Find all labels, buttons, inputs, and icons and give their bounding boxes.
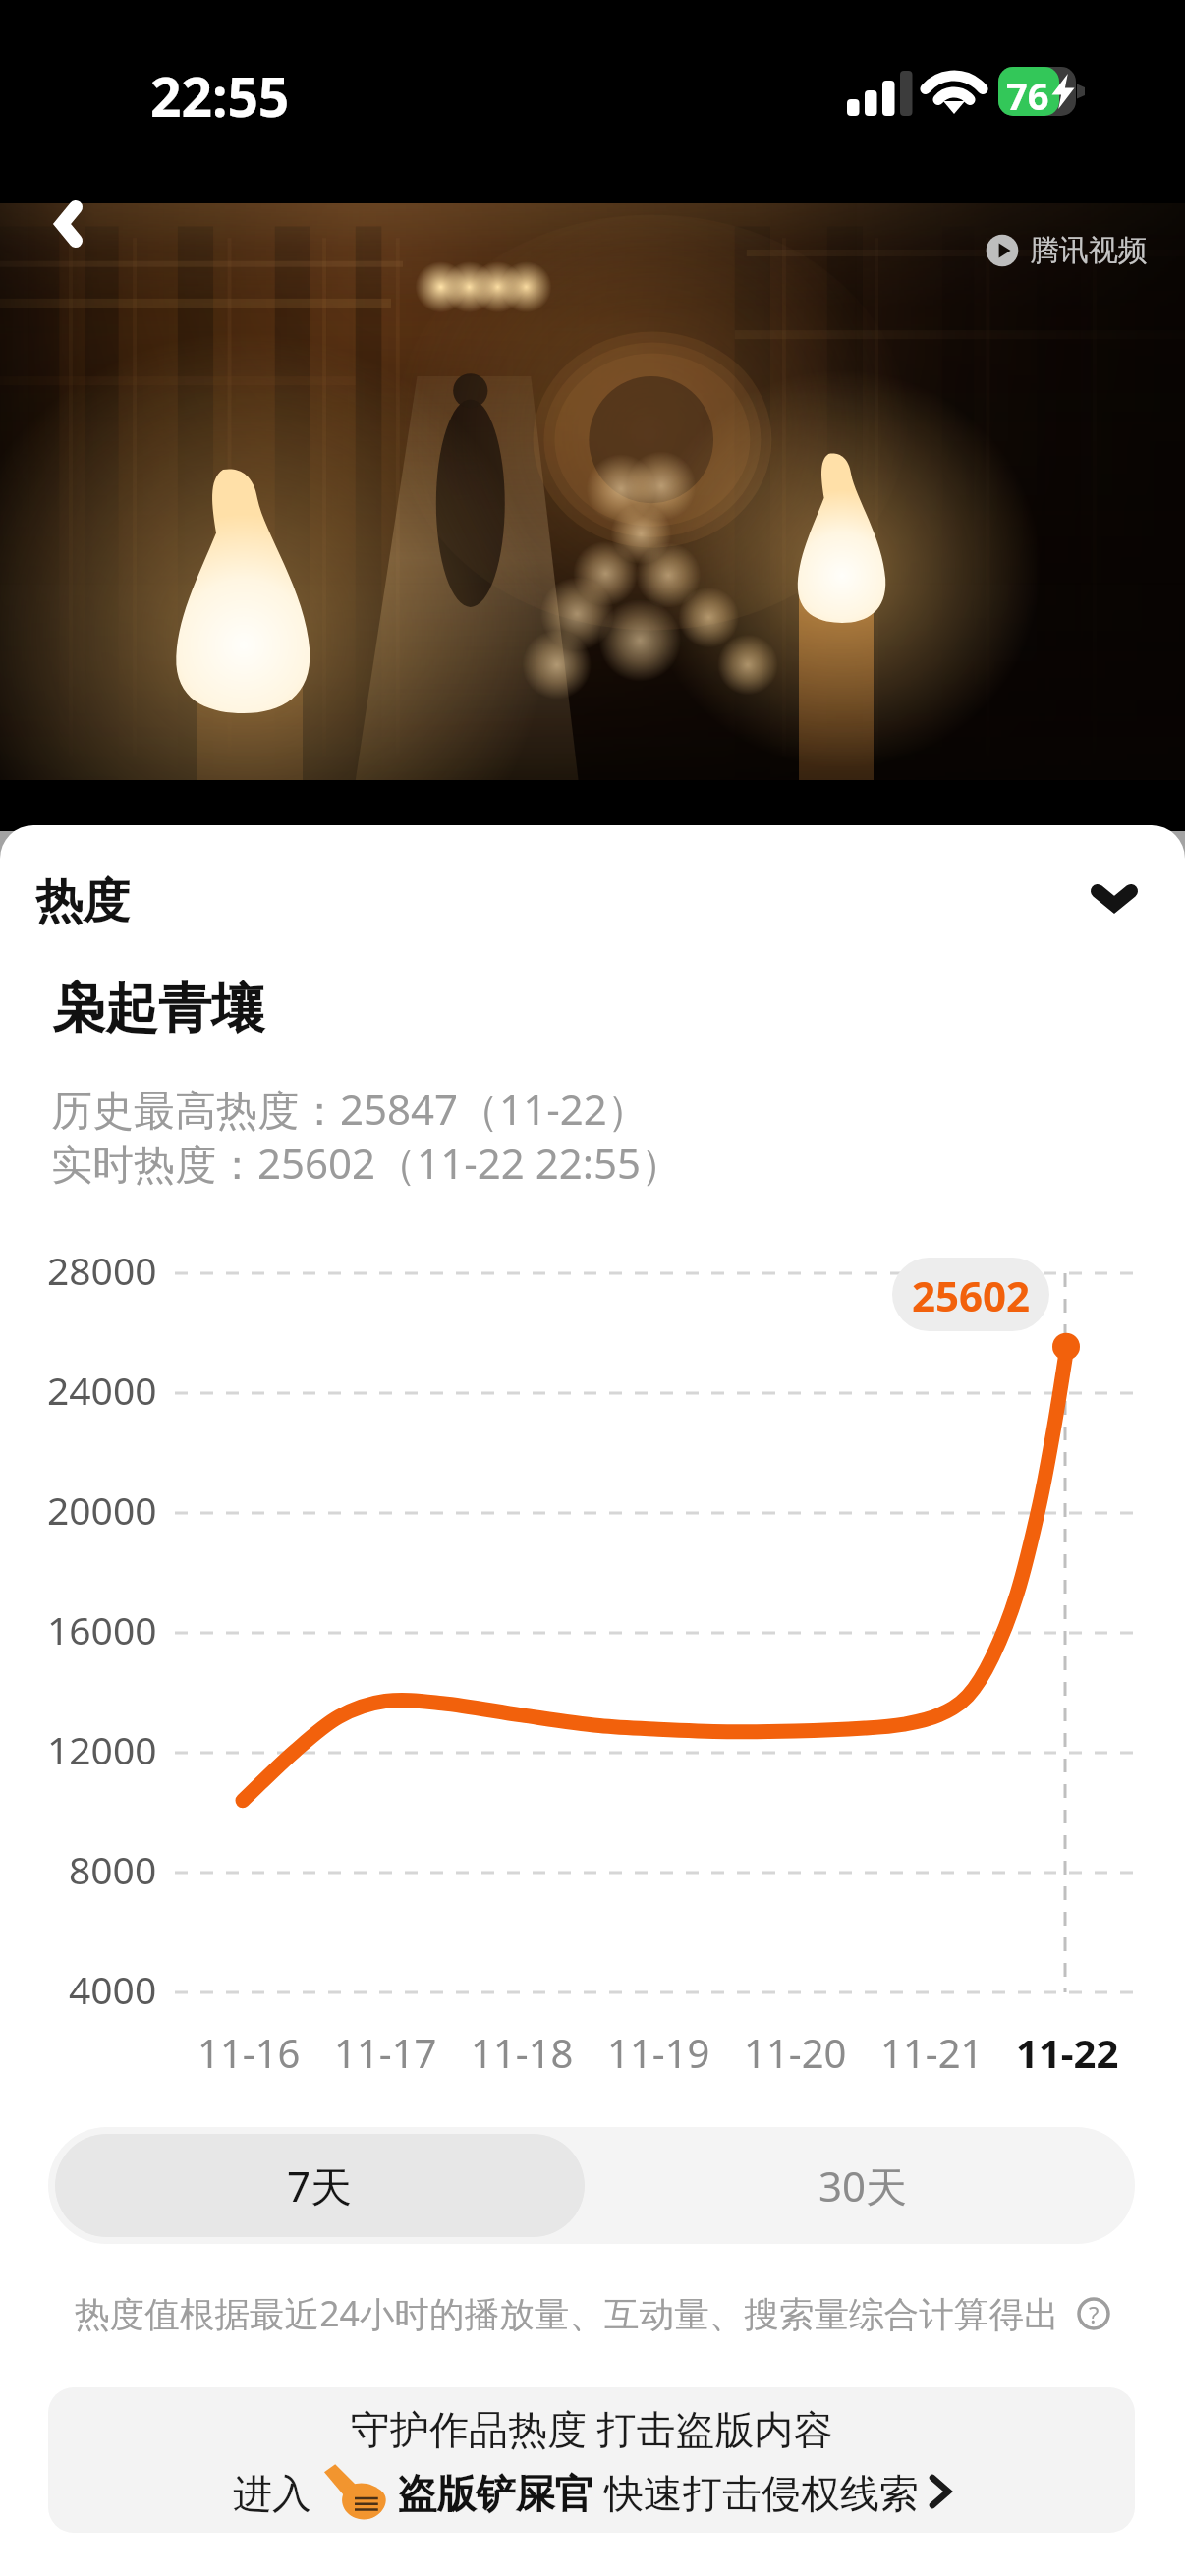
staticText: 20000 bbox=[47, 1484, 157, 1536]
staticText: 11-21 bbox=[880, 2026, 984, 2079]
staticText: 热度值根据最近24小时的播放量、互动量、搜索量综合计算得出 bbox=[75, 2289, 1059, 2337]
staticText: 进入 bbox=[233, 2465, 322, 2519]
button[interactable]: Help bbox=[1077, 2297, 1110, 2330]
staticText: 盗版铲屎官 bbox=[387, 2465, 604, 2519]
staticText: 16000 bbox=[47, 1603, 157, 1655]
staticText: 实时热度：25602（11-22 22:55） bbox=[51, 1135, 683, 1191]
staticText: 76 bbox=[1006, 70, 1049, 121]
staticText: ? bbox=[1089, 2298, 1100, 2330]
staticText: 枭起青壤 bbox=[52, 976, 264, 1042]
staticText: 22:55 bbox=[150, 59, 290, 133]
staticText: 11-20 bbox=[744, 2026, 847, 2079]
button[interactable]: 守护作品热度 打击盗版内容 bbox=[48, 2387, 1135, 2533]
staticText: 11-19 bbox=[607, 2026, 710, 2079]
staticText: 25602 bbox=[912, 1267, 1031, 1323]
staticText: 4000 bbox=[69, 1963, 157, 2015]
staticText: 7天 bbox=[287, 2157, 353, 2213]
staticText: 11-16 bbox=[197, 2026, 301, 2079]
button[interactable]: Collapse bbox=[1069, 853, 1159, 943]
staticText: 腾讯视频 bbox=[1030, 232, 1148, 269]
staticText: 11-17 bbox=[334, 2026, 437, 2079]
button[interactable]: 7天 bbox=[48, 2127, 592, 2244]
staticText: 热度 bbox=[35, 872, 130, 931]
staticText: 8000 bbox=[69, 1843, 157, 1895]
button[interactable]: Back bbox=[22, 177, 116, 271]
staticText: 30天 bbox=[818, 2157, 908, 2213]
staticText: 快速打击侵权线索 bbox=[604, 2465, 930, 2519]
staticText: 24000 bbox=[47, 1364, 157, 1416]
button[interactable]: 30天 bbox=[592, 2127, 1135, 2244]
staticText: 历史最高热度：25847（11-22） bbox=[51, 1081, 649, 1137]
button[interactable]: Tencent Video bbox=[986, 232, 1148, 269]
staticText: 28000 bbox=[47, 1244, 157, 1296]
staticText: 11-18 bbox=[471, 2026, 574, 2079]
staticText: 守护作品热度 打击盗版内容 bbox=[351, 2401, 833, 2455]
staticText: 11-22 bbox=[1016, 2026, 1119, 2079]
staticText: 12000 bbox=[47, 1723, 157, 1775]
